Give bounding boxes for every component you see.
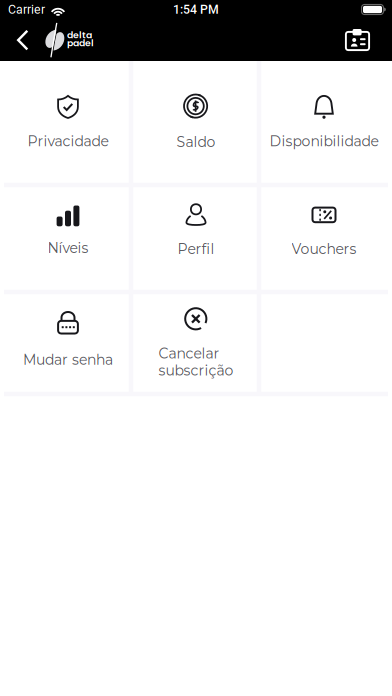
staticText: Carrier [8, 2, 45, 17]
staticText: Vouchers [291, 240, 356, 258]
staticText: Mudar senha [23, 351, 113, 368]
button[interactable]: Níveis [4, 185, 132, 292]
staticText: padel [67, 36, 94, 50]
staticText: Cancelar subscrição [158, 345, 233, 379]
staticText: Disponibilidade [269, 133, 378, 150]
staticText: Perfil [177, 240, 214, 258]
button[interactable]: Saldo [132, 61, 260, 185]
staticText: 1:54 PM [173, 2, 219, 17]
button[interactable]: Mudar senha [4, 292, 132, 394]
button[interactable]: Back [0, 19, 38, 60]
button[interactable]: Vouchers [260, 185, 388, 292]
button[interactable]: Privacidade [4, 61, 132, 185]
button[interactable]: Disponibilidade [260, 61, 388, 185]
staticText: Privacidade [27, 133, 108, 150]
button[interactable]: Membership card [329, 19, 392, 61]
staticText: Saldo [176, 133, 215, 151]
button[interactable]: Perfil [132, 185, 260, 292]
staticText: delta [67, 28, 92, 42]
button[interactable]: Cancelar subscrição [132, 292, 260, 394]
staticText: Níveis [47, 239, 88, 257]
